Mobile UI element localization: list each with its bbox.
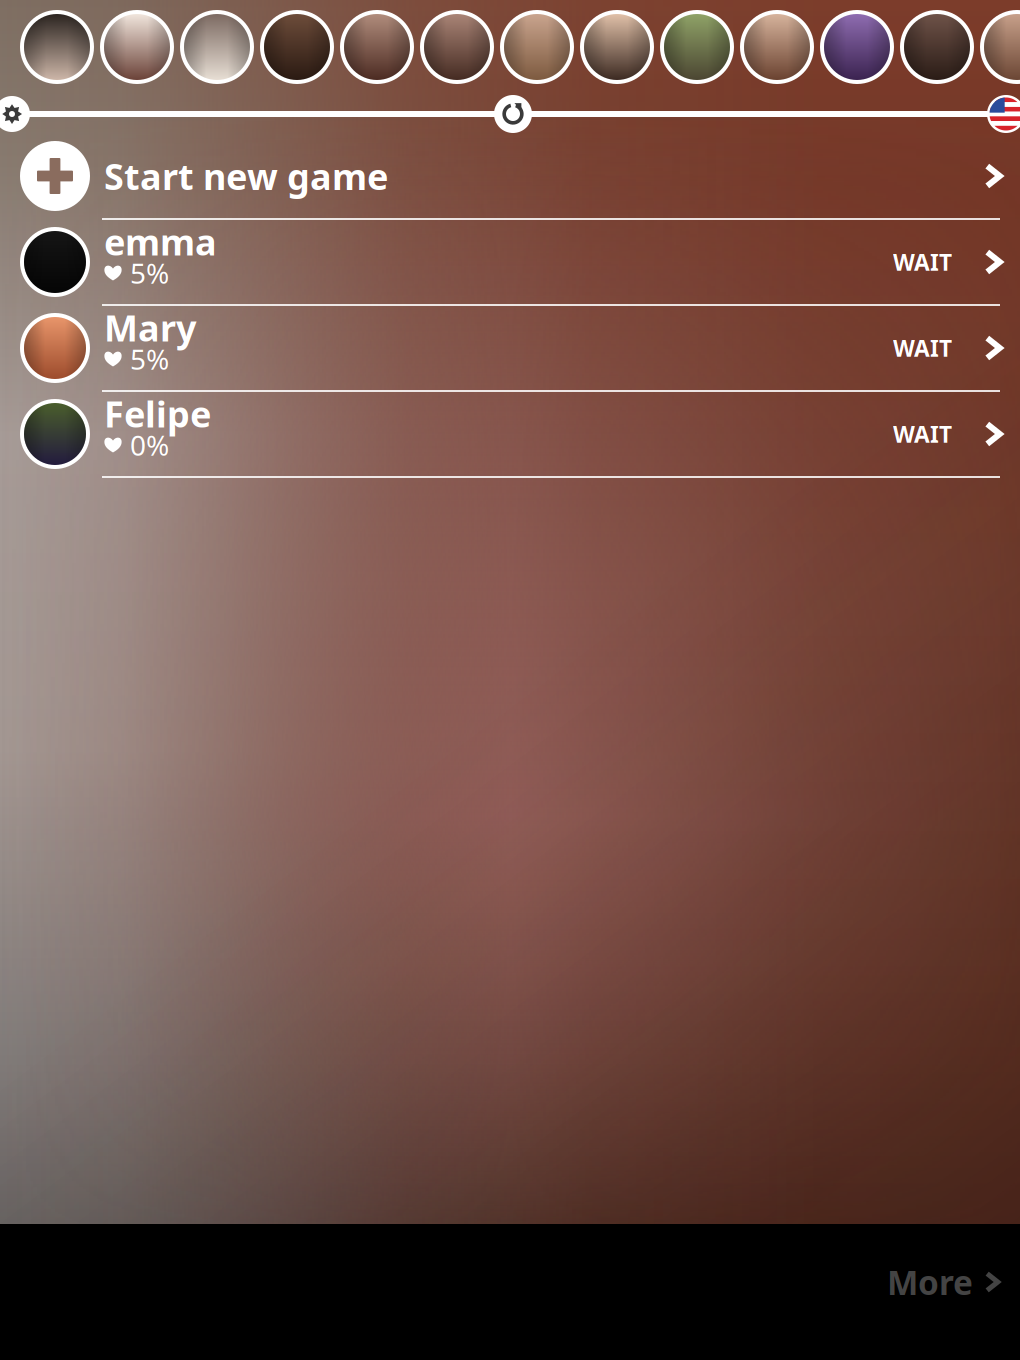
button[interactable]: emma (0, 220, 1020, 306)
button[interactable]: Mary (0, 306, 1020, 392)
staticText: WAIT (893, 247, 952, 277)
button[interactable]: Player photo (100, 10, 174, 84)
staticText: 5% (130, 254, 169, 291)
staticText: More (887, 1260, 973, 1304)
staticText: 5% (130, 340, 169, 377)
staticText: 0% (130, 426, 169, 463)
staticText: emma (104, 217, 217, 265)
staticText: Felipe (104, 389, 211, 437)
button[interactable]: Player photo (820, 10, 894, 84)
button[interactable]: Refresh (494, 95, 532, 133)
button[interactable]: Player photo (420, 10, 494, 84)
button[interactable]: More (0, 1224, 1020, 1360)
button[interactable]: Felipe (0, 392, 1020, 478)
staticText: WAIT (893, 333, 952, 363)
button[interactable]: Player photo (340, 10, 414, 84)
button[interactable]: Player photo (740, 10, 814, 84)
button[interactable]: Player photo (260, 10, 334, 84)
button[interactable]: Player photo (660, 10, 734, 84)
staticText: WAIT (893, 419, 952, 449)
button[interactable]: Player photo (180, 10, 254, 84)
button[interactable]: Player photo (580, 10, 654, 84)
button[interactable]: Settings (0, 96, 30, 132)
button[interactable]: Start new game (0, 134, 1020, 220)
button[interactable]: Player photo (500, 10, 574, 84)
button[interactable]: Player photo (20, 10, 94, 84)
staticText: Mary (104, 303, 197, 351)
button[interactable]: Player photo (900, 10, 974, 84)
button[interactable]: Player photo (980, 10, 1020, 84)
staticText: Start new game (104, 152, 388, 200)
button[interactable]: Language (987, 95, 1020, 133)
